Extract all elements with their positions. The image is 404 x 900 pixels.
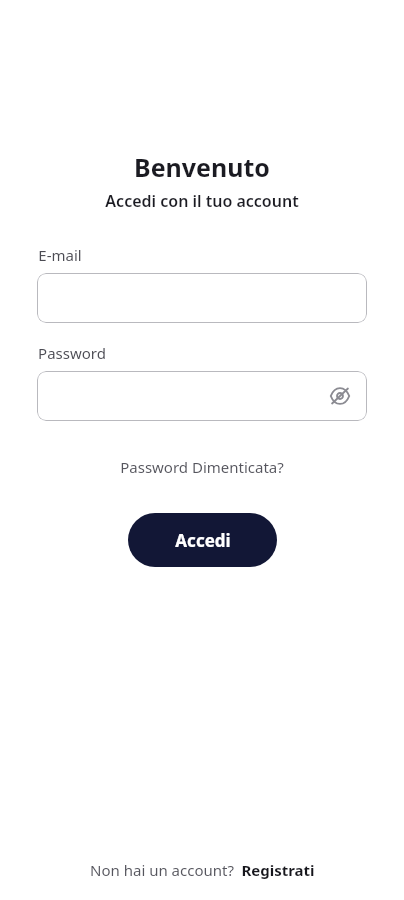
staticText: Password Dimenticata? [120, 457, 284, 477]
button[interactable] [37, 273, 367, 323]
button[interactable]: Non hai un account? [82, 856, 323, 884]
button[interactable]: Mostra password [327, 383, 353, 409]
staticText: Benvenuto [134, 150, 270, 184]
staticText: Accedi con il tuo account [105, 190, 299, 212]
staticText: Registrati [241, 860, 315, 880]
staticText: E-mail [38, 245, 82, 265]
button[interactable]: Mostra password [37, 371, 367, 421]
button[interactable]: Password Dimenticata? [114, 454, 290, 480]
staticText: Accedi [175, 529, 231, 552]
staticText: Password [38, 343, 106, 363]
staticText: Non hai un account? [90, 860, 234, 880]
button[interactable]: Accedi [128, 513, 277, 567]
